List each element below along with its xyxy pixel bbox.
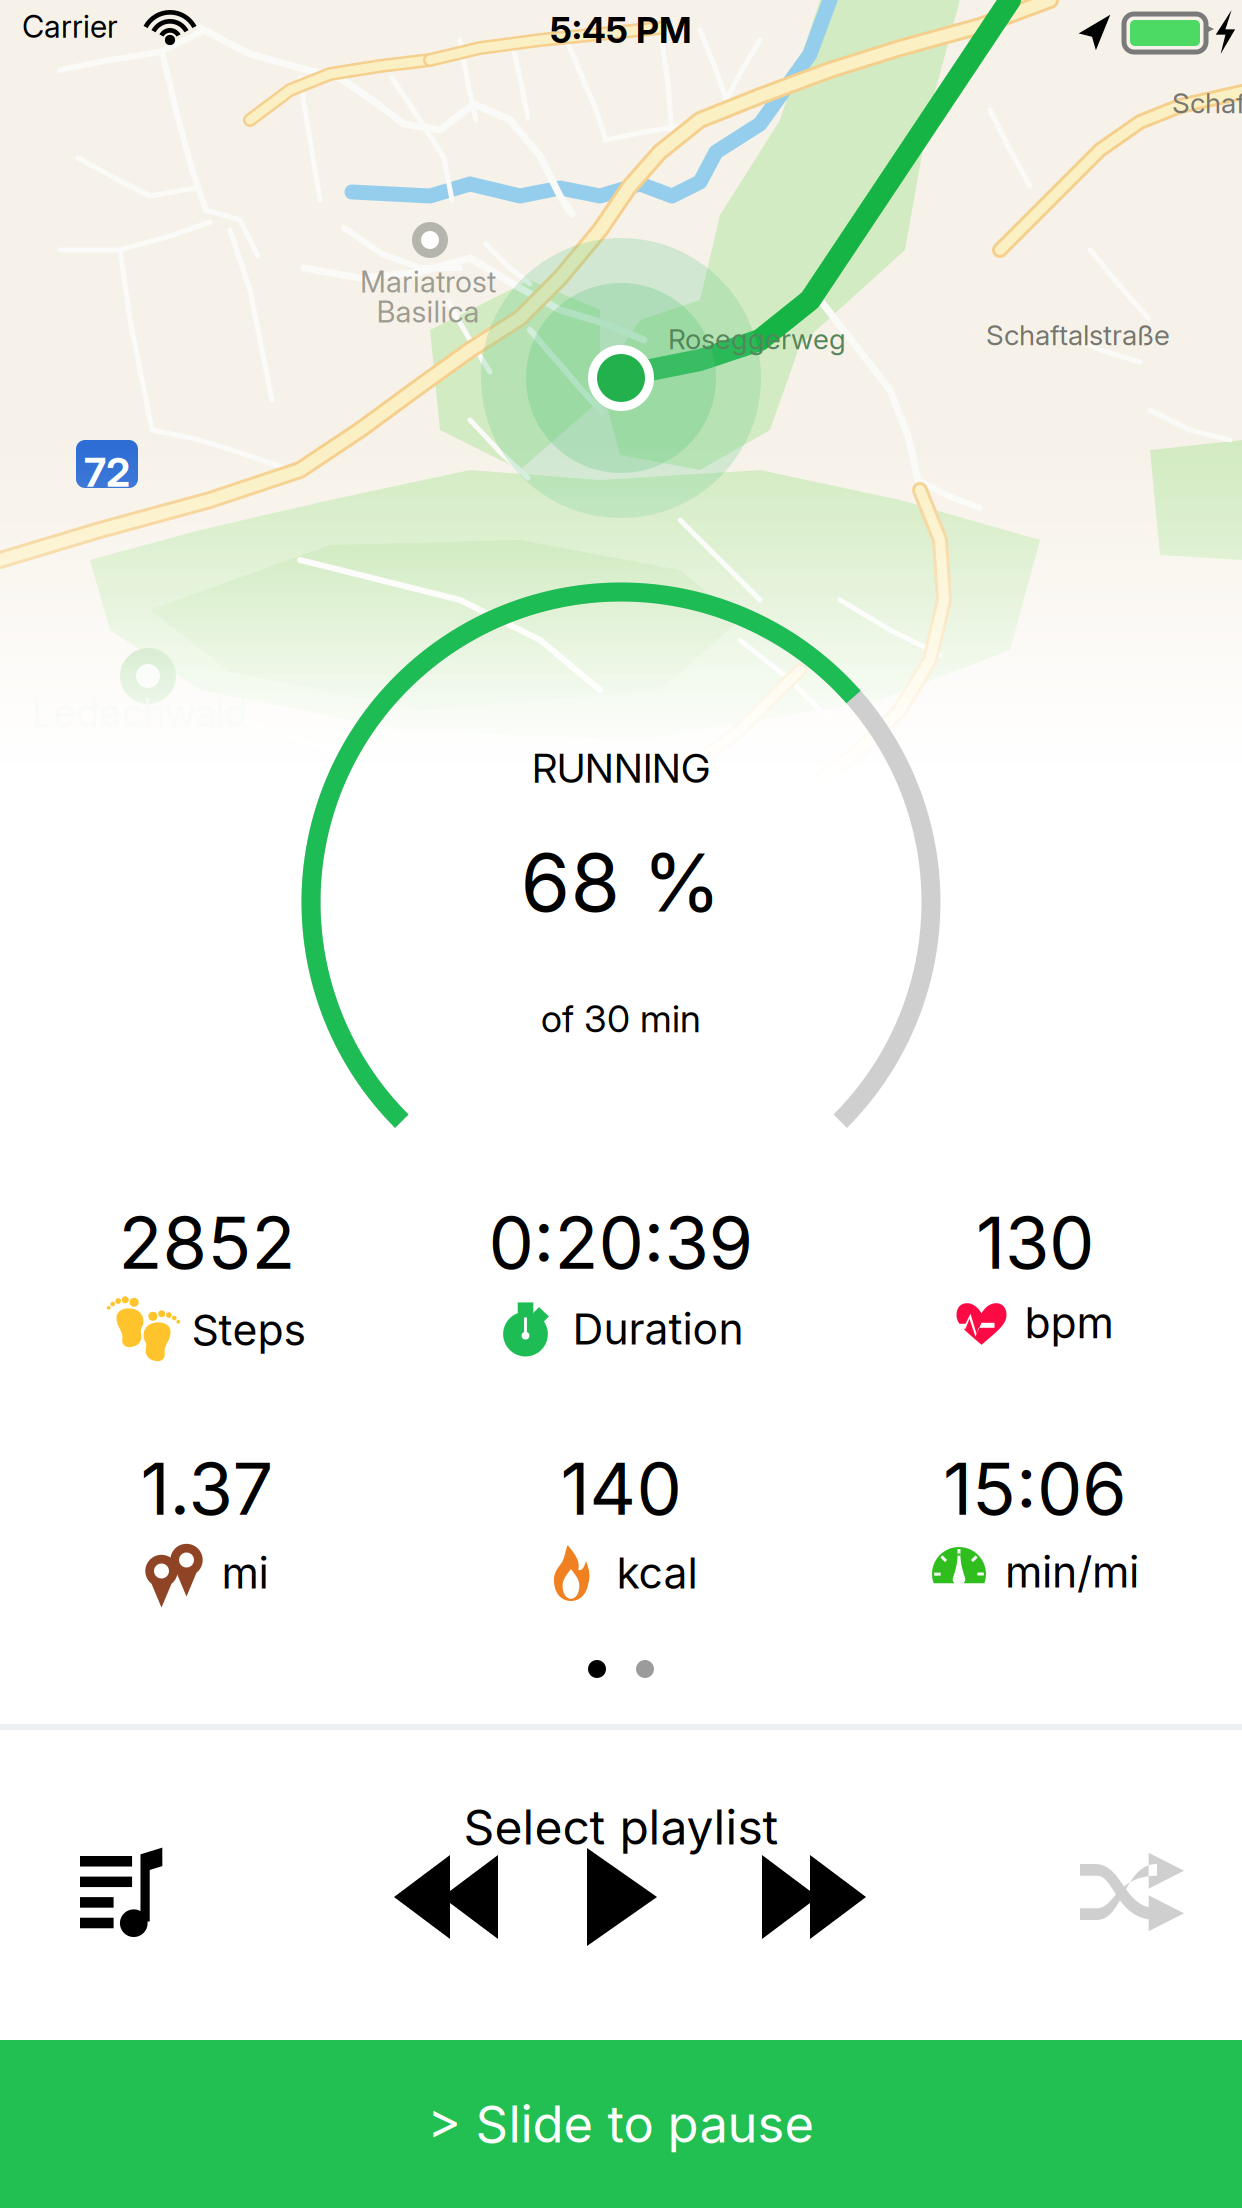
staticText: Roseggerweg bbox=[668, 322, 846, 356]
staticText: Schaft bbox=[1172, 86, 1242, 120]
staticText: Duration bbox=[572, 1303, 743, 1355]
staticText: Carrier bbox=[22, 8, 118, 45]
staticText: RUNNING bbox=[532, 744, 710, 792]
staticText: 2852 bbox=[118, 1199, 295, 1286]
staticText: kcal bbox=[616, 1547, 697, 1599]
staticText: mi bbox=[221, 1547, 268, 1599]
staticText: Basilica bbox=[376, 294, 479, 329]
staticText: bpm bbox=[1024, 1297, 1113, 1349]
button[interactable]: Next track bbox=[730, 1832, 900, 1962]
staticText: 0:20:39 bbox=[488, 1199, 753, 1286]
staticText: > Slide to pause bbox=[427, 2093, 814, 2155]
staticText: 140 bbox=[560, 1445, 681, 1532]
staticText: 68 % bbox=[520, 834, 721, 931]
staticText: min/mi bbox=[1005, 1546, 1139, 1598]
staticText: of 30 min bbox=[541, 996, 701, 1041]
staticText: Mariatrost bbox=[360, 264, 496, 299]
staticText: Schaftalstraße bbox=[986, 318, 1170, 352]
staticText: 1.37 bbox=[140, 1445, 273, 1532]
button[interactable]: Previous track bbox=[360, 1832, 530, 1962]
staticText: 72 bbox=[84, 448, 130, 496]
staticText: 5:45 PM bbox=[550, 8, 692, 52]
staticText: Steps bbox=[191, 1304, 306, 1356]
staticText: 15:06 bbox=[943, 1445, 1127, 1532]
staticText: echwald bbox=[100, 688, 247, 736]
staticText: 130 bbox=[976, 1199, 1094, 1286]
button[interactable]: Playlist bbox=[50, 1830, 200, 1960]
button[interactable]: > Slide to pause bbox=[0, 2040, 1242, 2208]
staticText: Select playlist bbox=[463, 1798, 778, 1856]
button[interactable]: Play bbox=[552, 1832, 692, 1962]
button[interactable]: Shuffle bbox=[1060, 1824, 1210, 1954]
